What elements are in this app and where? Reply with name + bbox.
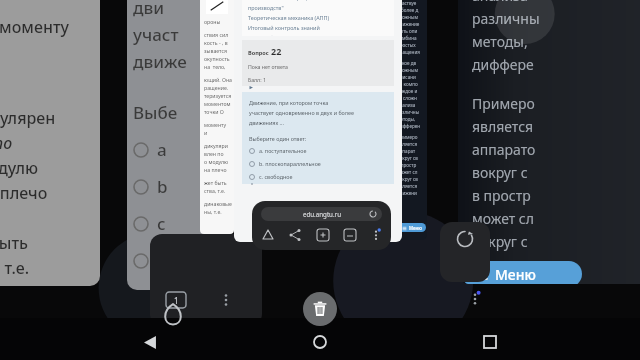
staticText: дикуляри xyxy=(204,142,228,149)
staticText: участвует одновременно в двух и более xyxy=(249,109,354,116)
staticText: ны, т.е. xyxy=(204,208,222,215)
staticText: методы, xyxy=(397,116,416,122)
staticText: 1 xyxy=(174,295,179,306)
staticText: моментом xyxy=(204,100,231,107)
staticText: может сл xyxy=(397,169,418,175)
button[interactable]: Home xyxy=(300,324,340,360)
button[interactable]: edu.angtu.ru xyxy=(261,207,382,221)
button[interactable]: Меню xyxy=(462,261,582,284)
staticText: вокруг с xyxy=(472,163,528,182)
button[interactable]: Close all xyxy=(303,292,337,326)
staticText: a. поступательное xyxy=(259,147,307,154)
staticText: о модулю xyxy=(204,158,229,165)
button[interactable]: Switch tabs xyxy=(342,227,358,243)
staticText: движени xyxy=(397,190,417,196)
staticText: Балл: 1 xyxy=(248,76,266,83)
button[interactable]: Home xyxy=(155,296,191,332)
staticText: окупность xyxy=(204,55,230,62)
staticText: Итоговый контроль знаний xyxy=(248,24,320,31)
staticText: вокруг св xyxy=(397,155,418,161)
staticText: в простр xyxy=(397,162,417,168)
staticText: Выберите один ответ: xyxy=(249,135,307,142)
staticText: влен по xyxy=(204,150,224,157)
staticText: комбина xyxy=(397,35,417,41)
staticText: методы, xyxy=(472,32,528,51)
staticText: ства, т.е. xyxy=(204,187,226,194)
staticText: различны xyxy=(472,9,540,28)
staticText: и более д xyxy=(397,7,419,13)
staticText: Пока нет ответа xyxy=(248,63,288,70)
staticText: ии на плечо xyxy=(0,182,48,204)
staticText: на компо xyxy=(397,81,418,87)
staticText: на плечо xyxy=(204,166,227,173)
button[interactable]: движени xyxy=(395,0,427,240)
staticText: является xyxy=(397,141,418,147)
button[interactable]: Recents xyxy=(470,324,510,360)
button[interactable]: ороны xyxy=(200,0,234,234)
staticText: ствия сил xyxy=(204,31,229,38)
staticText: анализа xyxy=(397,102,416,108)
staticText: edu.angtu.ru xyxy=(303,210,341,218)
staticText: сложным xyxy=(397,67,418,73)
staticText: анализа xyxy=(472,0,528,5)
staticText: динаковые xyxy=(204,200,232,207)
button[interactable]: More options xyxy=(468,292,482,306)
staticText: участвуе xyxy=(397,0,417,6)
staticText: является xyxy=(397,183,418,189)
staticText: вокруг св xyxy=(397,176,418,182)
button[interactable]: New tab xyxy=(315,227,331,243)
staticText: диффере xyxy=(472,55,534,74)
staticText: 22 xyxy=(271,45,282,57)
button[interactable]: Меню xyxy=(398,223,426,232)
staticText: ендикулярен xyxy=(0,107,56,129)
staticText: жет быть xyxy=(204,179,227,186)
staticText: Примеро xyxy=(472,94,535,113)
button[interactable]: технологических процессов и xyxy=(234,0,402,242)
button[interactable]: More options xyxy=(369,228,383,242)
button[interactable]: c. свободное xyxy=(249,173,394,180)
staticText: аппарат xyxy=(397,148,416,154)
staticText: производств" xyxy=(248,4,284,11)
staticText: может сл xyxy=(472,209,534,228)
staticText: Вопрос xyxy=(248,49,271,57)
staticText: вокруг с xyxy=(472,232,528,251)
staticText: ния в моменту xyxy=(0,16,69,38)
staticText: дифферен xyxy=(397,123,421,129)
staticText: различны xyxy=(397,109,420,115)
staticText: Меню xyxy=(495,265,536,284)
staticText: быть опи xyxy=(397,28,418,34)
staticText: теризуется xyxy=(204,92,232,99)
button[interactable]: Tabs xyxy=(166,292,186,308)
button[interactable]: a. поступательное xyxy=(249,147,394,154)
staticText: и xyxy=(204,129,208,136)
button[interactable]: More xyxy=(218,292,234,308)
button[interactable]: Home xyxy=(260,227,276,243)
staticText: движени xyxy=(472,278,533,284)
button[interactable]: анализа xyxy=(458,0,640,284)
staticText: простых xyxy=(397,42,416,48)
staticText: участ xyxy=(133,23,179,46)
staticText: сложным xyxy=(397,14,418,20)
button[interactable]: Share xyxy=(287,227,303,243)
staticText: является xyxy=(472,117,534,136)
staticText: a xyxy=(157,138,167,161)
button[interactable]: Reload xyxy=(456,230,474,248)
button[interactable]: b. плоскопараллельное xyxy=(249,160,394,167)
staticText: аппарато xyxy=(472,140,536,159)
staticText: описани xyxy=(397,74,416,80)
staticText: нства, т.е. xyxy=(0,257,30,279)
staticText: моменту xyxy=(204,121,227,128)
staticText: c. свободное xyxy=(259,173,293,180)
staticText: движение xyxy=(397,21,420,27)
staticText: b. плоскопараллельное xyxy=(259,160,321,167)
staticText: движениях ... xyxy=(249,119,284,126)
staticText: в простр xyxy=(472,186,531,205)
staticText: дви xyxy=(133,0,165,19)
button[interactable]: Back xyxy=(130,324,170,360)
staticText: Выбе xyxy=(133,101,178,124)
button[interactable]: дви xyxy=(127,0,219,290)
button[interactable]: Reload xyxy=(369,210,377,218)
staticText: Такое дв xyxy=(397,60,417,66)
button[interactable]: ния в моменту xyxy=(0,0,100,286)
